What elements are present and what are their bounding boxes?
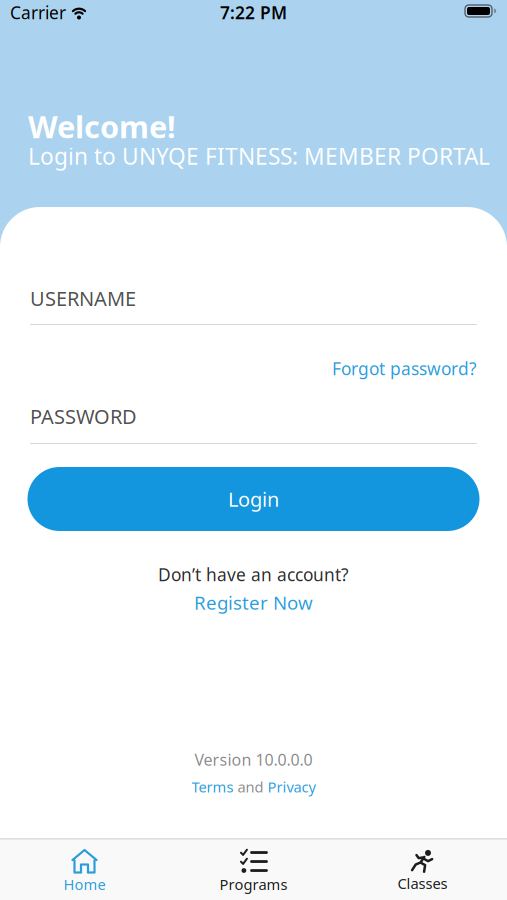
staticText: Carrier [10,1,66,24]
button[interactable]: Programs [169,848,338,894]
staticText: Privacy [267,777,315,796]
button[interactable]: Home [0,848,169,894]
button[interactable]: Forgot password? [332,357,477,380]
staticText: Terms [191,777,233,796]
button[interactable]: Register Now [194,590,313,615]
staticText: Programs [219,874,287,894]
button[interactable]: Classes [338,849,507,893]
button[interactable]: Privacy [267,777,315,796]
staticText: Classes [397,873,447,893]
staticText: Version 10.0.0.0 [194,749,312,770]
staticText: Welcome! [28,106,176,147]
staticText: Home [63,874,105,894]
staticText: Register Now [194,590,313,615]
staticText: USERNAME [30,285,136,312]
button[interactable]: Terms [191,777,233,796]
staticText: and [237,777,263,796]
button[interactable]: Login [27,467,479,531]
staticText: Don’t have an account? [158,563,349,586]
staticText: 7:22 PM [220,1,287,24]
staticText: Login [228,486,279,512]
staticText: Login to UNYQE FITNESS: MEMBER PORTAL [28,141,490,171]
staticText: PASSWORD [30,403,137,430]
staticText: Forgot password? [332,357,477,380]
